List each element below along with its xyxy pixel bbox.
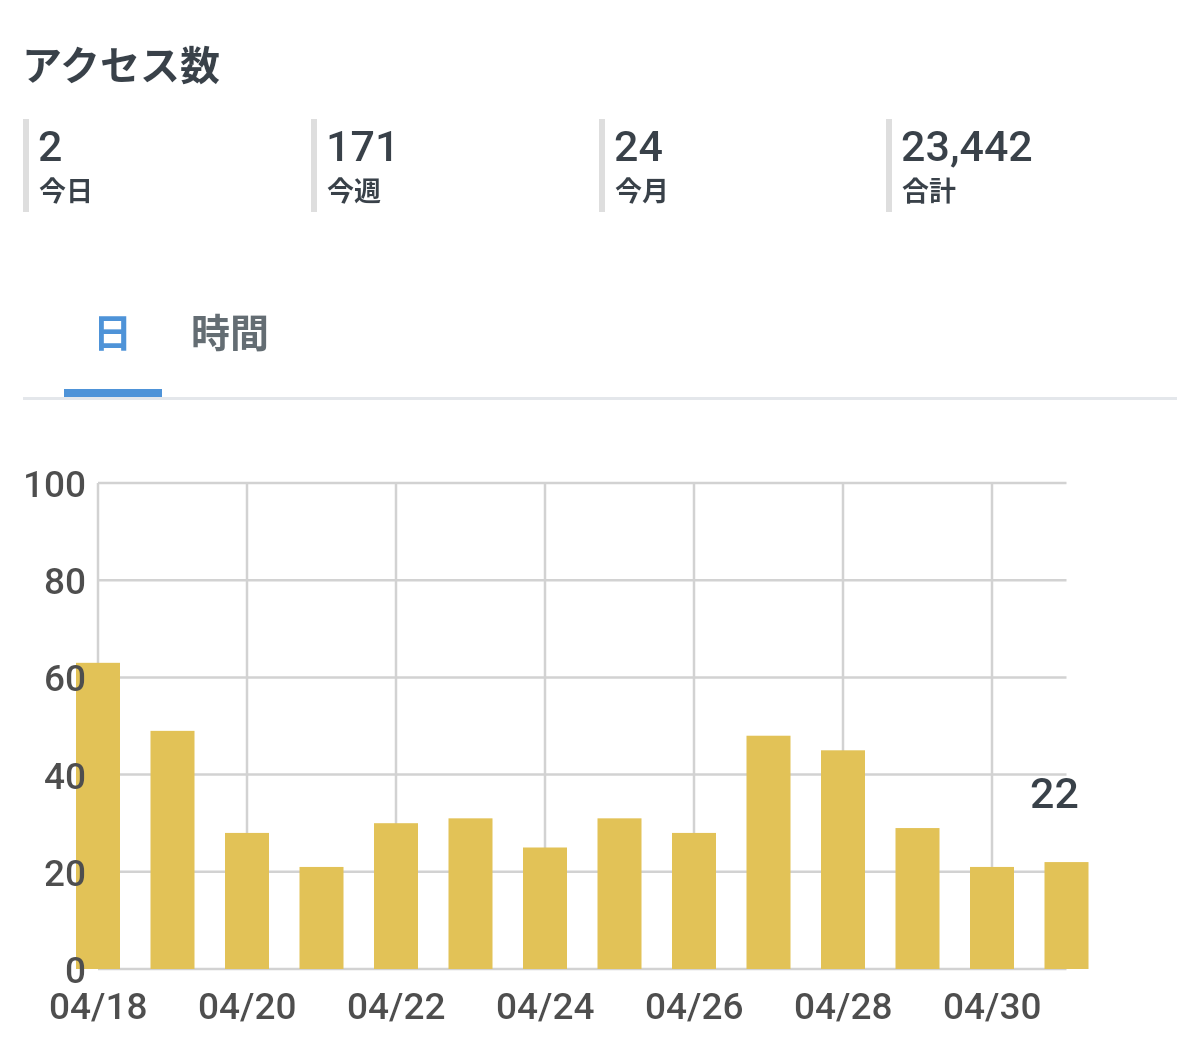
staticText: 今週 <box>327 170 381 209</box>
staticText: 22 <box>1030 768 1079 818</box>
staticText: 0 <box>65 949 87 992</box>
staticText: 20 <box>44 852 87 895</box>
button[interactable]: 時間 <box>172 288 288 397</box>
staticText: 04/24 <box>496 985 595 1028</box>
staticText: 合計 <box>902 170 956 209</box>
staticText: 24 <box>614 121 663 171</box>
staticText: 23,442 <box>901 121 1033 171</box>
staticText: 2 <box>38 121 63 171</box>
staticText: 171 <box>326 121 400 171</box>
staticText: 04/28 <box>794 985 893 1028</box>
staticText: 今月 <box>615 170 669 209</box>
staticText: 80 <box>44 560 87 603</box>
staticText: 04/20 <box>198 985 297 1028</box>
staticText: 今日 <box>39 170 93 209</box>
staticText: 100 <box>23 463 87 506</box>
staticText: 時間 <box>191 302 270 358</box>
button[interactable]: 日 <box>64 288 162 397</box>
other: Daily access bar chart <box>68 483 1097 973</box>
staticText: 04/26 <box>645 985 744 1028</box>
staticText: 40 <box>44 755 87 798</box>
staticText: 60 <box>44 657 87 700</box>
staticText: 04/22 <box>347 985 446 1028</box>
staticText: アクセス数 <box>22 34 220 92</box>
staticText: 04/18 <box>49 985 148 1028</box>
staticText: 日 <box>93 302 133 358</box>
staticText: 04/30 <box>943 985 1042 1028</box>
